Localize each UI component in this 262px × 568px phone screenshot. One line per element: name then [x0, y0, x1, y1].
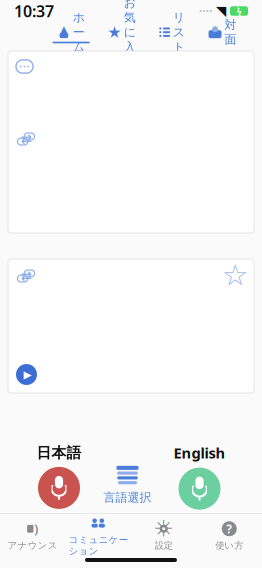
staticText: 言語選択	[103, 490, 151, 505]
button[interactable]: 日本語 microphone	[38, 467, 80, 509]
button[interactable]: ?	[196, 515, 262, 551]
staticText: ホーム	[73, 10, 85, 54]
button[interactable]: ★	[101, 25, 142, 43]
staticText: English	[173, 443, 225, 463]
button[interactable]: ⇄	[8, 51, 254, 233]
button[interactable]: コミュニケーション	[65, 509, 131, 557]
button[interactable]: English microphone	[178, 468, 220, 510]
staticText: 設定	[155, 540, 173, 551]
staticText: 対面	[224, 17, 236, 47]
button[interactable]: ✳	[131, 515, 196, 551]
staticText: リスト	[173, 10, 185, 54]
staticText: )	[34, 521, 38, 537]
staticText: ⇄	[20, 131, 31, 146]
staticText: コミュニケーション	[69, 534, 128, 557]
staticText: ☆	[222, 258, 248, 292]
button[interactable]: 言語選択	[103, 463, 151, 505]
staticText: 日本語	[36, 444, 81, 462]
staticText: ◥	[216, 3, 226, 18]
staticText: お気に入り	[124, 0, 136, 69]
staticText: ▲	[59, 23, 68, 36]
staticText: ✳	[154, 516, 173, 542]
staticText: アナウンス	[8, 540, 58, 551]
staticText: ϟ	[236, 5, 241, 17]
staticText: ★	[107, 23, 121, 41]
button[interactable]: ▲	[50, 25, 92, 43]
staticText: ?	[226, 521, 232, 537]
staticText: 10:37	[14, 0, 54, 22]
button[interactable]: リスト	[151, 25, 193, 43]
staticText: 使い方	[215, 540, 243, 551]
staticText: ▶	[24, 368, 32, 380]
staticText: ⇄	[20, 268, 31, 283]
button[interactable]: ⇄	[8, 259, 254, 393]
button[interactable]: )	[0, 515, 65, 551]
button[interactable]: 対面	[202, 25, 243, 43]
